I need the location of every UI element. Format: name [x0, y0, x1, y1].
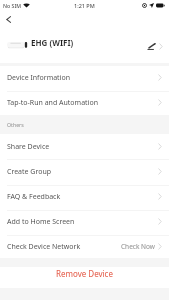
button[interactable]: Add to Home Screen	[0, 209, 169, 234]
staticText: Check Now	[121, 242, 155, 251]
staticText: 1:21 PM	[74, 2, 95, 9]
button[interactable]: Check Device Network	[0, 234, 169, 259]
staticText: Remove Device	[56, 268, 113, 279]
staticText: Others	[7, 121, 24, 128]
button[interactable]: EHG (WIFI)	[0, 31, 169, 58]
staticText: Create Group	[7, 167, 52, 177]
staticText: Share Device	[7, 142, 50, 152]
button[interactable]: Tap-to-Run and Automation	[0, 90, 169, 115]
button[interactable]: Share Device	[0, 134, 169, 159]
staticText: Device Information	[7, 73, 71, 83]
button[interactable]: FAQ & Feedback	[0, 184, 169, 209]
staticText: Check Device Network	[7, 242, 81, 252]
button[interactable]: Device Information	[0, 65, 169, 90]
button[interactable]: Back	[1, 12, 15, 26]
staticText: EHG (WIFI)	[31, 37, 74, 48]
button[interactable]: Remove Device	[0, 267, 169, 288]
staticText: No SIM	[3, 2, 21, 9]
staticText: Add to Home Screen	[7, 217, 75, 227]
staticText: Tap-to-Run and Automation	[7, 98, 98, 108]
button[interactable]: Rename device	[144, 39, 158, 53]
staticText: FAQ & Feedback	[7, 192, 61, 202]
button[interactable]: Create Group	[0, 159, 169, 184]
